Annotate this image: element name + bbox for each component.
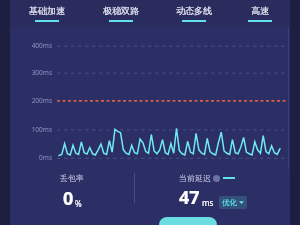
- staticText: 丢包率: [60, 173, 84, 183]
- staticText: 基础加速: [29, 5, 65, 16]
- staticText: 动态多线: [176, 5, 212, 16]
- staticText: 0ms: [10, 153, 52, 162]
- staticText: 当前延迟: [179, 173, 211, 183]
- staticText: 300ms: [10, 68, 52, 77]
- staticText: 极稳双路: [103, 5, 139, 16]
- button[interactable]: 丢包率: [10, 169, 134, 215]
- staticText: 400ms: [10, 41, 52, 50]
- button[interactable]: 动态多线: [157, 0, 230, 27]
- staticText: 0: [63, 186, 74, 211]
- staticText: 高速: [251, 5, 269, 16]
- staticText: 200ms: [10, 96, 52, 105]
- staticText: ms: [202, 197, 214, 208]
- staticText: 优化: [222, 198, 237, 207]
- staticText: %: [75, 198, 82, 209]
- button[interactable]: Accelerate: [159, 217, 217, 225]
- button[interactable]: 基础加速: [10, 0, 84, 27]
- staticText: 100ms: [10, 125, 52, 134]
- button[interactable]: 当前延迟: [135, 169, 290, 215]
- staticText: 47: [179, 185, 200, 210]
- button[interactable]: 优化: [219, 196, 247, 209]
- button[interactable]: 极稳双路: [84, 0, 157, 27]
- button[interactable]: 高速: [230, 0, 290, 27]
